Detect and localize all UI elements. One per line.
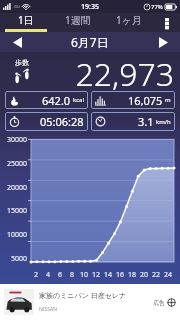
staticText: 20000 [7,183,28,193]
staticText: 広告 [153,299,165,307]
staticText: 16 [116,270,125,280]
button[interactable]: 3.1 [91,112,175,131]
staticText: 家族のミニバン 日産セレナ [39,291,127,301]
staticText: 20 [140,270,149,280]
staticText: 6月7日 [71,34,109,50]
staticText: 3.1 [138,114,154,129]
staticText: 14 [104,270,113,280]
staticText: 19:35 [81,2,99,12]
staticText: 05:06:28 [40,114,84,129]
button[interactable]: 1ヶ月 [103,13,154,32]
staticText: 24 [164,270,173,280]
staticText: 10 [80,270,89,280]
staticText: 16,075 [128,93,163,108]
button[interactable]: Previous day [0,32,34,52]
button[interactable]: 642.0 [5,91,88,109]
button[interactable]: 05:06:28 [5,112,88,131]
staticText: km/h [156,118,171,126]
staticText: 22 [152,270,161,280]
staticText: kcal [73,96,84,104]
staticText: 1日 [18,13,34,27]
staticText: NISSAN [39,306,57,313]
staticText: 2 [34,270,39,280]
button[interactable]: 16,075 [91,91,175,109]
button[interactable]: More options [154,13,180,32]
staticText: 15000 [7,206,28,216]
staticText: 22,973 [44,52,174,91]
staticText: au [14,3,20,10]
staticText: m [165,96,171,104]
button[interactable]: 1日 [0,13,52,32]
staticText: 4 [46,270,51,280]
staticText: 30000 [7,135,28,145]
button[interactable]: Ad info [167,298,176,307]
staticText: 25000 [7,159,28,169]
staticText: 10000 [7,230,28,240]
staticText: 8 [70,270,75,280]
staticText: 歩数 [15,58,29,67]
staticText: 18 [128,270,137,280]
staticText: 1週間 [65,13,91,27]
staticText: 1ヶ月 [116,13,142,27]
staticText: 77% [151,3,163,11]
button[interactable]: 家族のミニバン 日産セレナ [0,284,180,320]
staticText: 642.0 [42,93,71,108]
button[interactable]: Next day [146,32,180,52]
staticText: 5000 [11,254,28,264]
staticText: 12 [92,270,101,280]
button[interactable]: 歩数 [0,52,180,91]
staticText: 6 [58,270,63,280]
button[interactable]: 1週間 [52,13,103,32]
